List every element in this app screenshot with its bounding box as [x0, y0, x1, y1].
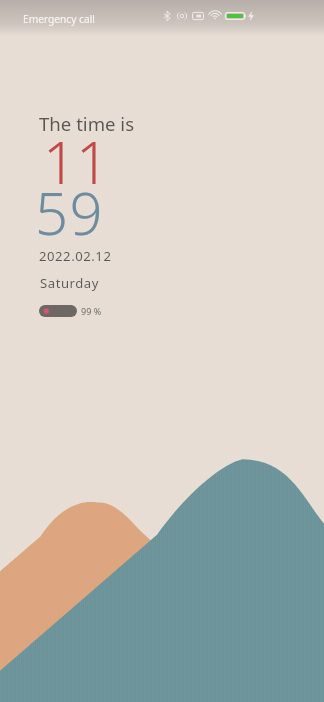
button[interactable]: Emergency call	[23, 12, 95, 26]
staticText: 2022.02.12	[39, 247, 112, 265]
staticText: 59	[35, 173, 105, 252]
button[interactable]: Battery 99 percent	[39, 305, 77, 317]
staticText: 11	[43, 122, 110, 201]
staticText: The time is	[39, 111, 135, 136]
staticText: Saturday	[40, 274, 99, 292]
staticText: 99 %	[81, 305, 102, 317]
